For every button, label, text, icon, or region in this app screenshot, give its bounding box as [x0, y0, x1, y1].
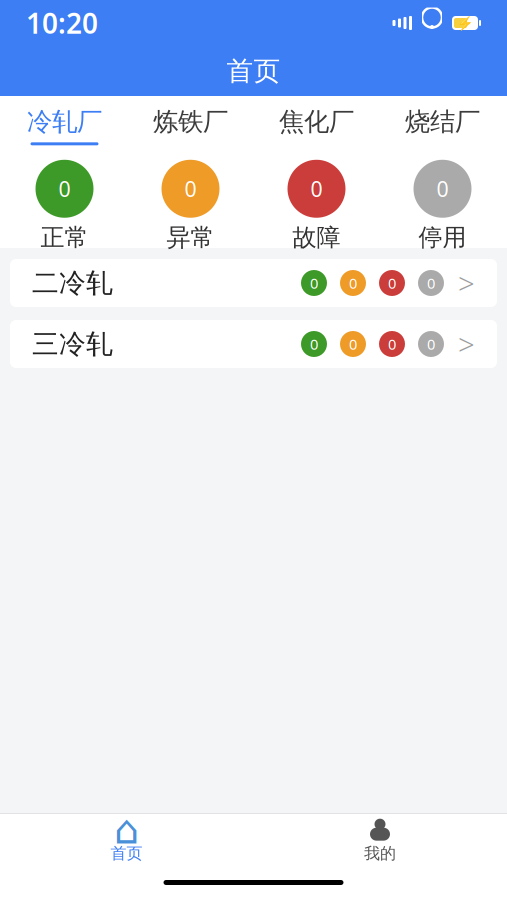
staticText: ⌂	[114, 807, 139, 852]
staticText: 0	[349, 273, 357, 293]
button[interactable]: 焦化厂	[253, 104, 379, 148]
staticText: 0	[388, 334, 396, 354]
staticText: 故障	[292, 223, 340, 252]
staticText: 停用	[418, 223, 466, 252]
staticText: 0	[310, 175, 322, 203]
staticText: 首页	[226, 55, 280, 87]
staticText: 10:20	[26, 4, 98, 42]
staticText: 0	[388, 273, 396, 293]
staticText: 0	[427, 273, 435, 293]
staticText: 二冷轧	[32, 267, 113, 299]
staticText: 异常	[166, 223, 214, 252]
button[interactable]: 二冷轧	[10, 259, 497, 307]
staticText: 0	[184, 175, 196, 203]
staticText: 首页	[110, 844, 142, 863]
staticText: 正常	[40, 223, 88, 252]
staticText: 冷轧厂	[27, 106, 102, 137]
staticText: 0	[310, 334, 318, 354]
staticText: 0	[436, 175, 448, 203]
staticText: 炼铁厂	[153, 106, 228, 137]
button[interactable]: 炼铁厂	[127, 104, 253, 148]
staticText: 我的	[364, 844, 396, 863]
button[interactable]: 冷轧厂	[1, 104, 127, 148]
staticText: >	[458, 324, 475, 363]
staticText: ⚡	[456, 15, 473, 31]
staticText: >	[458, 263, 475, 302]
staticText: 烧结厂	[405, 106, 480, 137]
button[interactable]: 我的	[253, 814, 507, 866]
staticText: 0	[349, 334, 357, 354]
button[interactable]: 烧结厂	[379, 104, 505, 148]
button[interactable]: 三冷轧	[10, 320, 497, 368]
staticText: 0	[310, 273, 318, 293]
staticText: 0	[58, 175, 70, 203]
staticText: 三冷轧	[32, 328, 113, 360]
staticText: 焦化厂	[279, 106, 354, 137]
staticText: 0	[427, 334, 435, 354]
button[interactable]: ⌂	[0, 814, 253, 866]
